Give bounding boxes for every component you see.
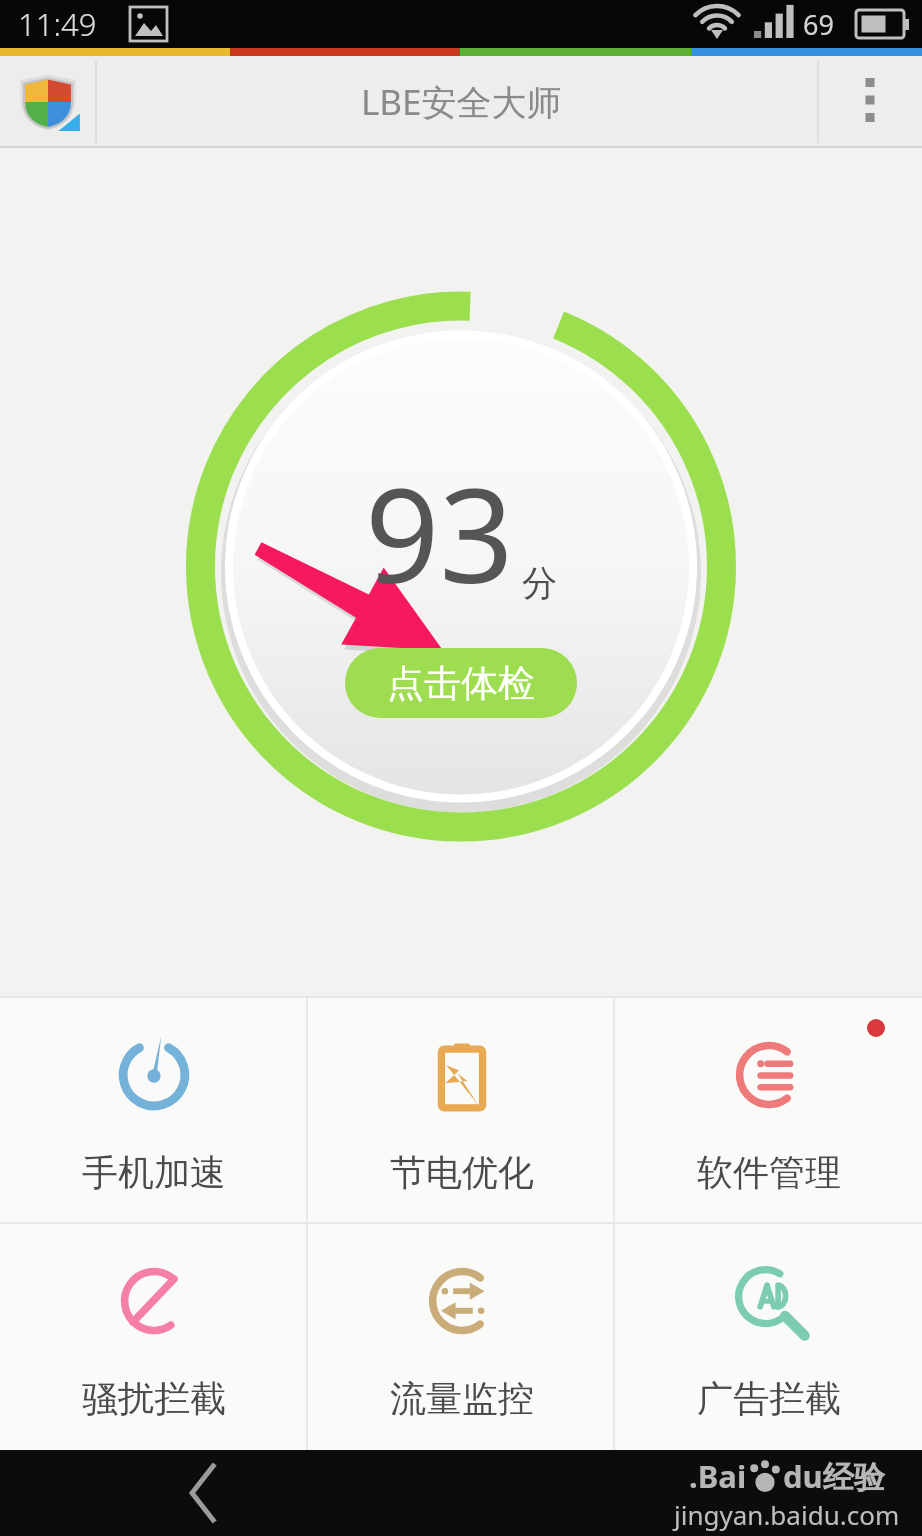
staticText: 软件管理	[697, 1150, 841, 1195]
button[interactable]: 点击体检	[345, 648, 577, 718]
staticText: 骚扰拦截	[82, 1376, 226, 1421]
staticText: LBE安全大师	[361, 78, 562, 126]
button[interactable]: More options	[818, 56, 922, 148]
staticText: 分	[522, 561, 557, 605]
staticText: 广告拦截	[697, 1376, 841, 1421]
button[interactable]: 手机加速	[0, 998, 308, 1223]
staticText: 节电优化	[390, 1150, 534, 1195]
staticText: jingyan.baidu.com	[674, 1497, 900, 1532]
button[interactable]: 广告拦截	[615, 1224, 922, 1450]
staticText: 手机加速	[82, 1150, 226, 1195]
button[interactable]: 节电优化	[308, 998, 615, 1223]
button[interactable]: 软件管理	[615, 998, 922, 1223]
staticText: 11:49	[18, 3, 97, 45]
button[interactable]: LBE 安全大师 home	[0, 56, 96, 148]
staticText: 69	[803, 6, 834, 43]
staticText: 93	[365, 444, 514, 621]
button[interactable]: 骚扰拦截	[0, 1224, 308, 1450]
staticText: .Bai	[689, 1455, 747, 1497]
staticText: du经验	[783, 1455, 885, 1497]
staticText: 点击体检	[387, 660, 535, 707]
staticText: 流量监控	[390, 1376, 534, 1421]
button[interactable]: 流量监控	[308, 1224, 615, 1450]
button[interactable]: Back	[150, 1450, 260, 1536]
